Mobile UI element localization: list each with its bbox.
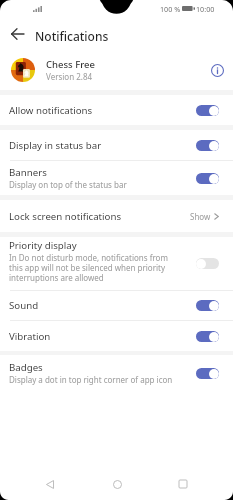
- button[interactable]: [196, 300, 219, 311]
- button[interactable]: Lock screen notifications: [0, 200, 233, 232]
- staticText: 100 %: [160, 4, 181, 14]
- button[interactable]: [196, 331, 219, 342]
- staticText: Display on top of the status bar: [9, 179, 127, 190]
- staticText: Chess Free: [46, 58, 95, 71]
- button[interactable]: Vibration: [0, 321, 233, 351]
- button[interactable]: Badges: [0, 355, 233, 391]
- staticText: Show: [190, 211, 211, 222]
- staticText: Vibration: [9, 330, 51, 343]
- button[interactable]: [196, 368, 219, 379]
- button[interactable]: Allow notifications: [0, 95, 233, 125]
- button[interactable]: Home: [101, 468, 133, 500]
- staticText: Display in status bar: [9, 139, 102, 152]
- button[interactable]: Display in status bar: [0, 130, 233, 160]
- staticText: Badges: [9, 361, 43, 374]
- button[interactable]: Recent apps: [167, 468, 199, 500]
- button[interactable]: App info: [206, 59, 228, 81]
- staticText: Notifications: [35, 28, 109, 44]
- button[interactable]: [196, 173, 219, 184]
- button[interactable]: [196, 105, 219, 116]
- staticText: 10:00: [196, 4, 215, 14]
- button[interactable]: Back: [5, 22, 30, 45]
- staticText: Lock screen notifications: [9, 210, 122, 223]
- button[interactable]: [196, 258, 219, 269]
- button[interactable]: Sound: [0, 291, 233, 320]
- staticText: Sound: [9, 299, 39, 312]
- button[interactable]: Priority display: [0, 237, 233, 290]
- staticText: Priority display: [9, 239, 77, 252]
- button[interactable]: Chess Free: [0, 50, 233, 90]
- staticText: Version 2.84: [46, 71, 93, 82]
- staticText: Banners: [9, 166, 47, 179]
- staticText: Allow notifications: [9, 104, 93, 117]
- staticText: In Do not disturb mode, notifications fr…: [9, 252, 169, 283]
- button[interactable]: [196, 140, 219, 151]
- button[interactable]: Back: [34, 468, 66, 500]
- button[interactable]: Banners: [0, 161, 233, 195]
- staticText: Display a dot in top right corner of app…: [9, 374, 173, 385]
